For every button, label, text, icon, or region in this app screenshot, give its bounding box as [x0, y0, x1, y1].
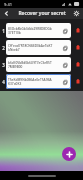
button[interactable]: Delete: [73, 60, 82, 69]
button[interactable]: 83Ocb8bGb3dbb29R8D8DGb: [6, 23, 71, 38]
button[interactable]: Delete: [73, 43, 82, 52]
staticText: 37ET10b: [8, 31, 21, 35]
staticText: 9:41: [4, 2, 12, 7]
staticText: 2: [1, 45, 6, 51]
button[interactable]: Cff'eod7R18CN6BD0bAe1bK7: [6, 40, 71, 55]
button[interactable]: Add secret: [62, 147, 76, 161]
button[interactable]: Back: [2, 9, 11, 18]
staticText: 7MB9B00: [8, 65, 23, 69]
staticText: 3: [1, 62, 6, 68]
button[interactable]: b6cK0VbBd0b6U9T7eCSeR5T: [6, 57, 71, 72]
button[interactable]: Settings: [72, 9, 81, 18]
staticText: T5eKdM9Nb0B6Ae0eT5A9BA: [8, 78, 52, 82]
button[interactable]: Copy: [61, 78, 69, 86]
button[interactable]: T5eKdM9Nb0B6Ae0eT5A9BA: [6, 74, 71, 89]
staticText: bNceb7: [8, 48, 20, 52]
staticText: 83Ocb8bGb3dbb29R8D8DGb: [8, 27, 52, 31]
button[interactable]: Delete: [73, 26, 82, 35]
staticText: Cff'eod7R18CN6BD0bAe1bK7: [8, 44, 53, 48]
staticText: K37o0K3: [8, 82, 22, 86]
button[interactable]: Copy: [61, 27, 69, 35]
button[interactable]: Copy: [61, 61, 69, 69]
staticText: 4: [1, 79, 6, 85]
button[interactable]: Delete: [73, 77, 82, 86]
staticText: b6cK0VbBd0b6U9T7eCSeR5T: [8, 61, 52, 65]
staticText: 1: [1, 28, 6, 34]
staticText: Recover your secret: [18, 10, 66, 17]
button[interactable]: Copy: [61, 44, 69, 52]
